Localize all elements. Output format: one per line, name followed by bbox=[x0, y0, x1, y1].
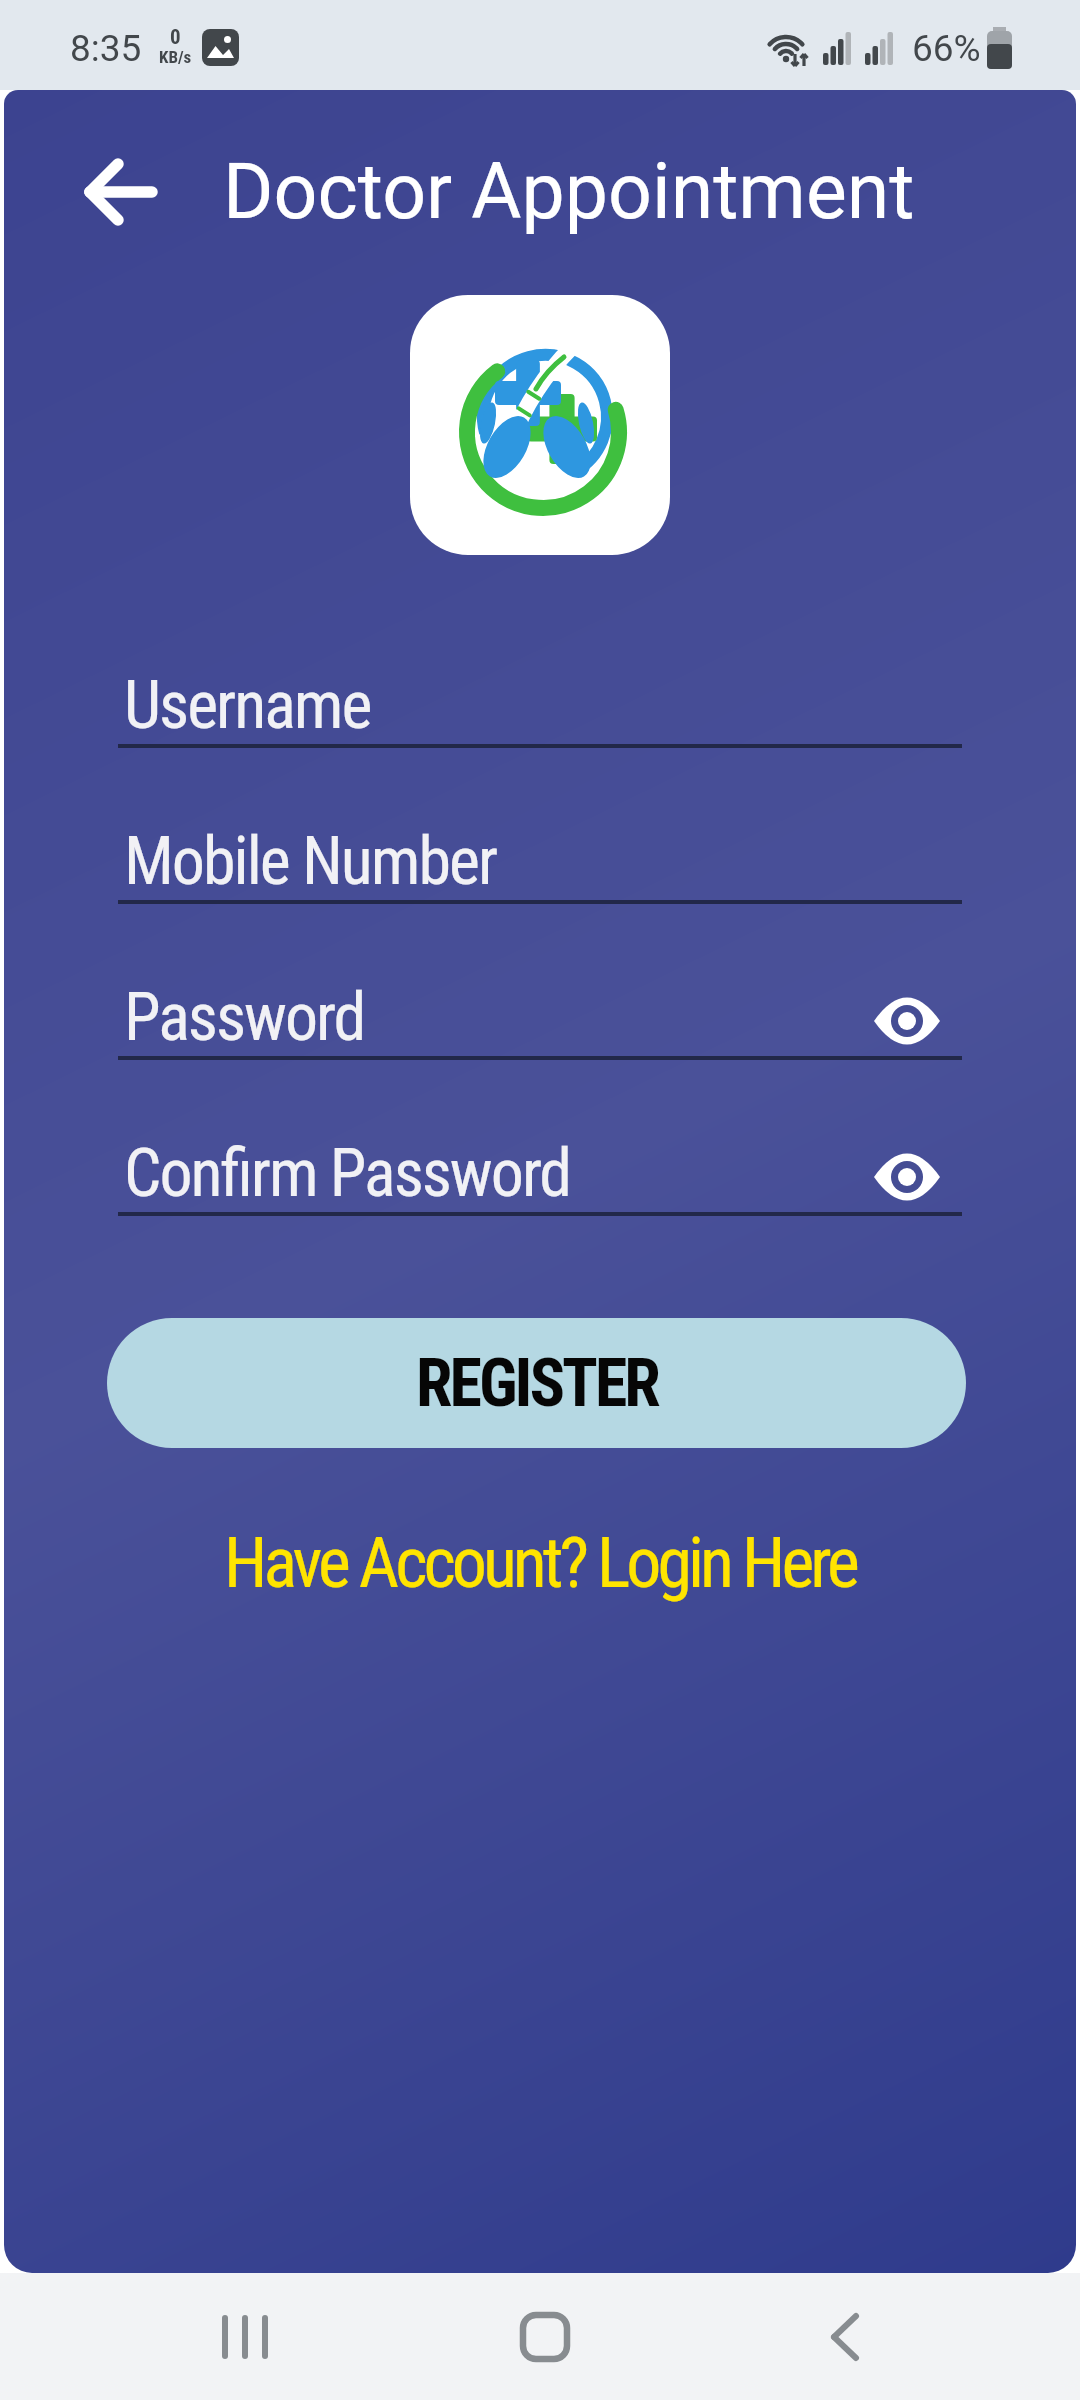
staticText: Password bbox=[124, 979, 874, 1056]
staticText: Mobile Number bbox=[124, 823, 962, 900]
staticText: Confirm Password bbox=[124, 1135, 874, 1212]
staticText: 66% bbox=[912, 27, 981, 70]
staticText: 8:35 bbox=[70, 27, 142, 70]
button[interactable] bbox=[200, 2292, 290, 2382]
staticText: KB/s bbox=[159, 47, 192, 67]
staticText: REGISTER bbox=[416, 1345, 658, 1422]
button[interactable]: Mobile Number bbox=[118, 823, 962, 904]
staticText: 0 bbox=[170, 25, 181, 50]
button[interactable]: Username bbox=[118, 667, 962, 748]
staticText: Doctor Appointment bbox=[223, 147, 915, 237]
staticText: Username bbox=[124, 667, 962, 744]
button[interactable]: REGISTER bbox=[107, 1318, 966, 1448]
button[interactable] bbox=[500, 2292, 590, 2382]
staticText: Have Account? Login Here bbox=[224, 1522, 856, 1604]
button[interactable]: Have Account? Login Here bbox=[224, 1522, 856, 1604]
button[interactable] bbox=[66, 137, 176, 247]
button[interactable]: Confirm Password bbox=[118, 1135, 962, 1216]
button[interactable] bbox=[800, 2292, 890, 2382]
button[interactable]: Password bbox=[118, 979, 962, 1060]
